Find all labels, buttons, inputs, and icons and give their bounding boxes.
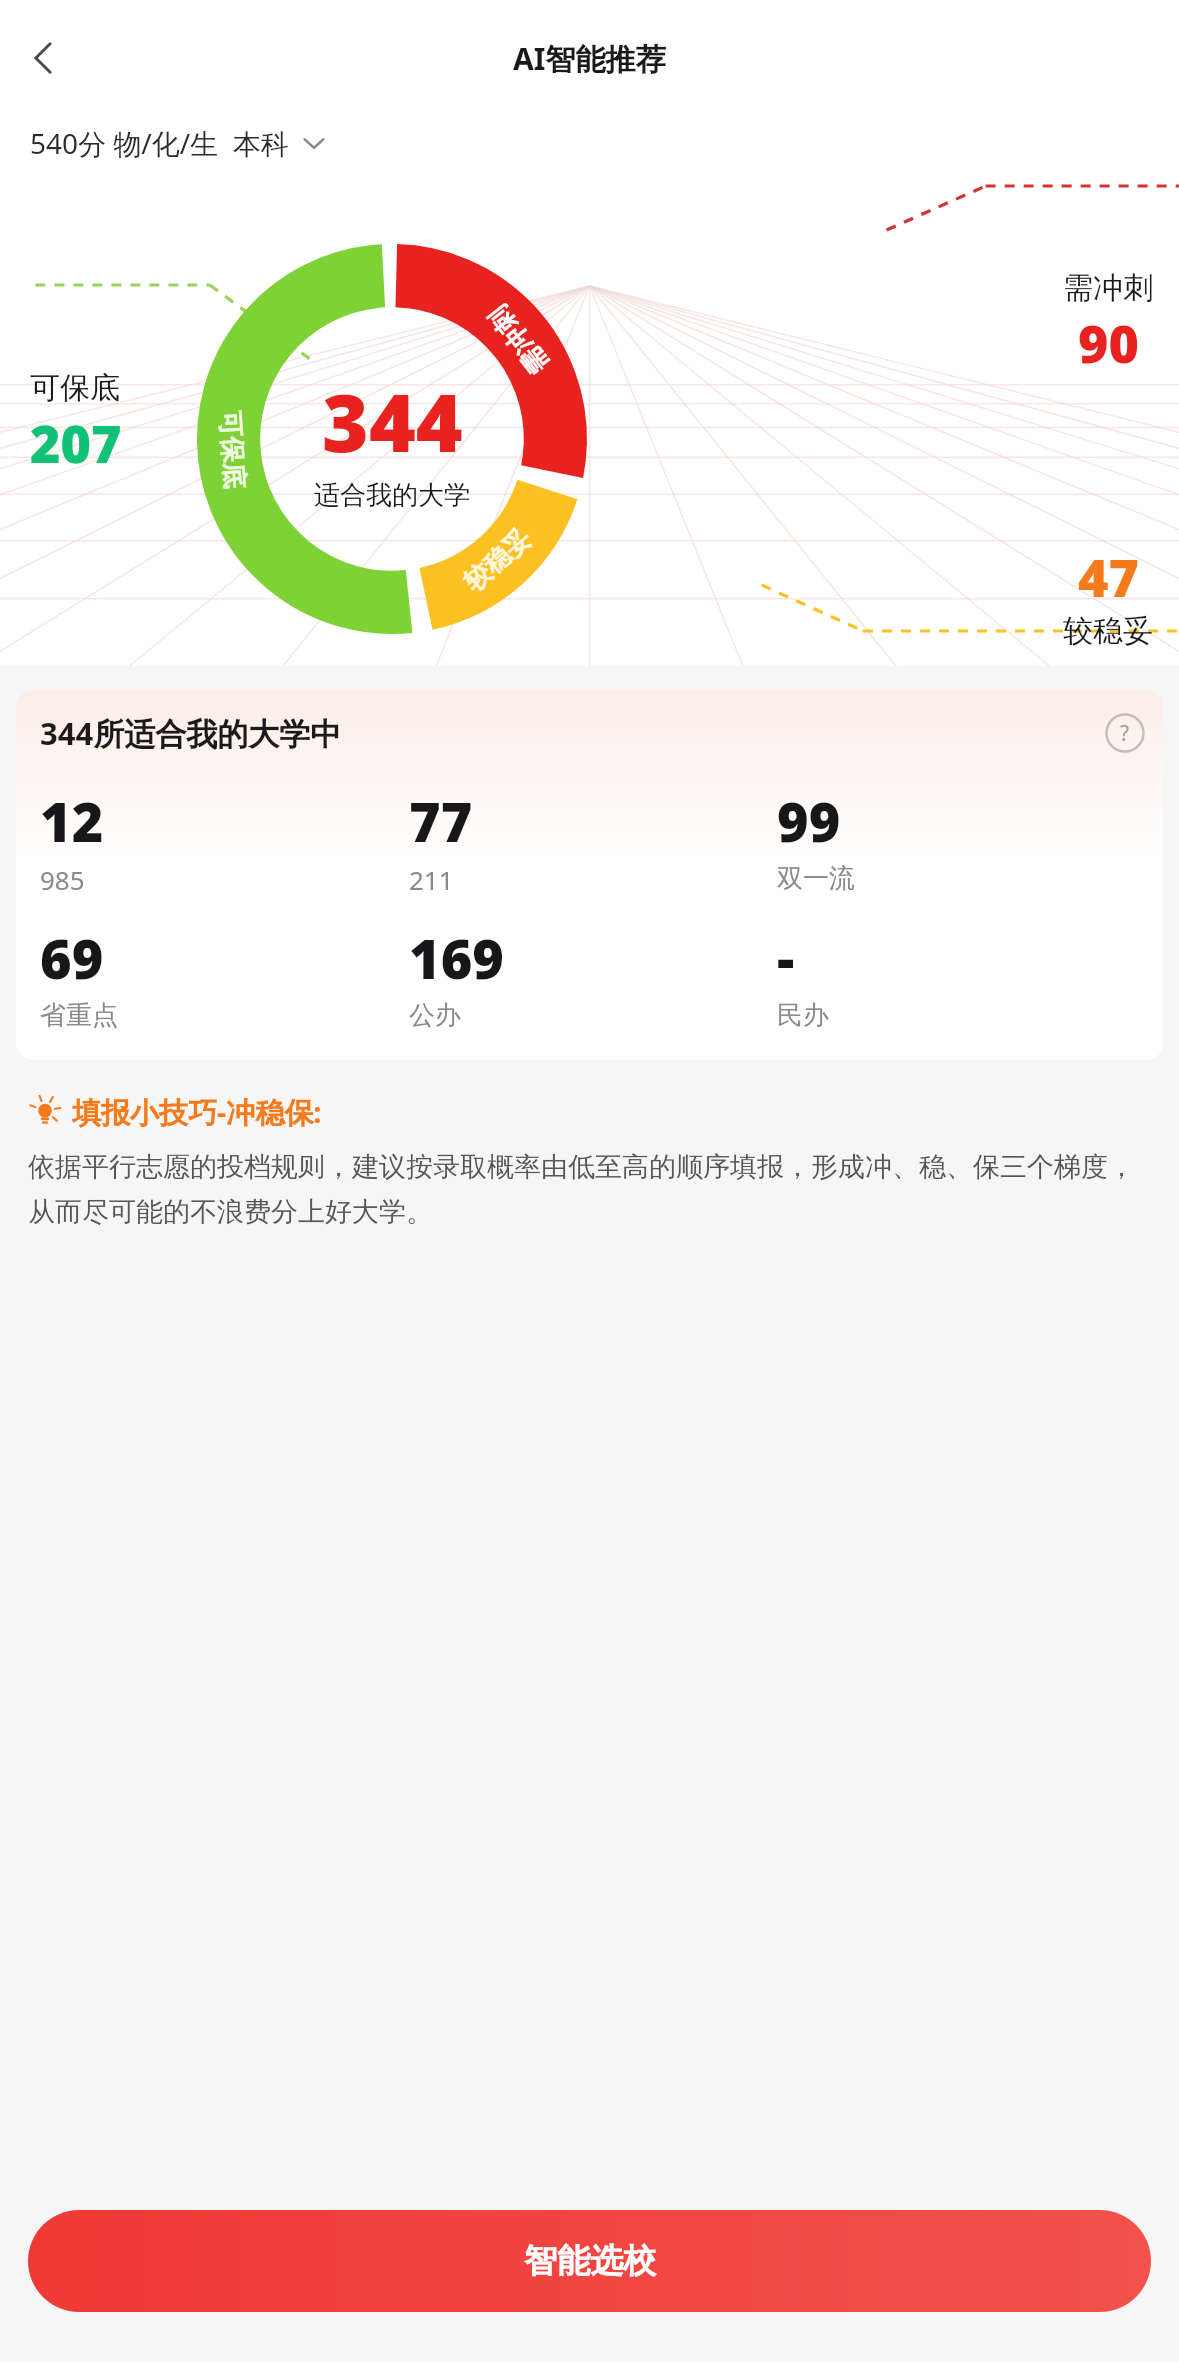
staticText: 需冲刺 [481,299,555,381]
staticText: 智能选校 [524,2240,656,2282]
button[interactable]: Back [12,26,76,90]
staticText: 省重点 [40,999,118,1032]
staticText: 540分 物/化/生 本科 [30,124,289,162]
staticText: 较稳妥 [1063,612,1153,650]
staticText: 需冲刺 [1063,269,1153,307]
staticText: 较稳妥 [457,522,537,598]
staticText: 填报小技巧-冲稳保: [72,1092,322,1132]
staticText: 12 [40,784,104,858]
button[interactable]: 344所适合我的大学中 [16,690,1163,1060]
staticText: 公办 [409,999,461,1032]
button[interactable]: 智能选校 [28,2210,1151,2312]
staticText: 可保底 [213,410,251,490]
staticText: ? [1120,719,1130,748]
staticText: 依据平行志愿的投档规则，建议按录取概率由低至高的顺序填报，形成冲、稳、保三个梯度… [28,1150,1151,1229]
staticText: - [777,921,795,995]
staticText: 99 [777,784,841,858]
button[interactable]: 帮助说明 [1105,713,1145,753]
staticText: 90 [1078,307,1139,378]
staticText: 77 [409,784,473,858]
staticText: 47 [1078,541,1139,612]
staticText: 207 [30,407,122,478]
staticText: 双一流 [777,862,855,895]
staticText: 344 [322,366,463,475]
staticText: AI智能推荐 [513,38,666,79]
button[interactable]: 540分 物/化/生 本科 [30,124,327,162]
staticText: 可保底 [30,369,120,407]
staticText: 985 [40,862,85,897]
staticText: 69 [40,921,104,995]
staticText: 211 [409,862,454,897]
staticText: 民办 [777,999,829,1032]
staticText: 适合我的大学 [314,479,470,512]
staticText: 344所适合我的大学中 [40,712,342,754]
staticText: 169 [409,921,504,995]
